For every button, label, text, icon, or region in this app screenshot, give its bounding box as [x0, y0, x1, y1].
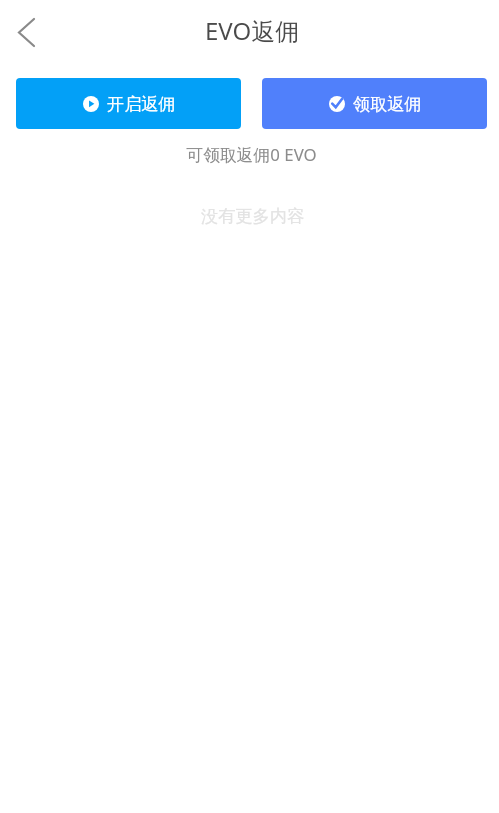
button[interactable]: Back: [2, 8, 50, 56]
staticText: 没有更多内容: [3, 205, 499, 227]
button[interactable]: 开启返佣: [16, 78, 241, 129]
staticText: 领取返佣: [353, 93, 422, 115]
staticText: 开启返佣: [107, 93, 176, 115]
button[interactable]: 领取返佣: [262, 78, 487, 129]
staticText: 可领取返佣0 EVO: [2, 143, 499, 166]
staticText: EVO返佣: [205, 14, 300, 47]
